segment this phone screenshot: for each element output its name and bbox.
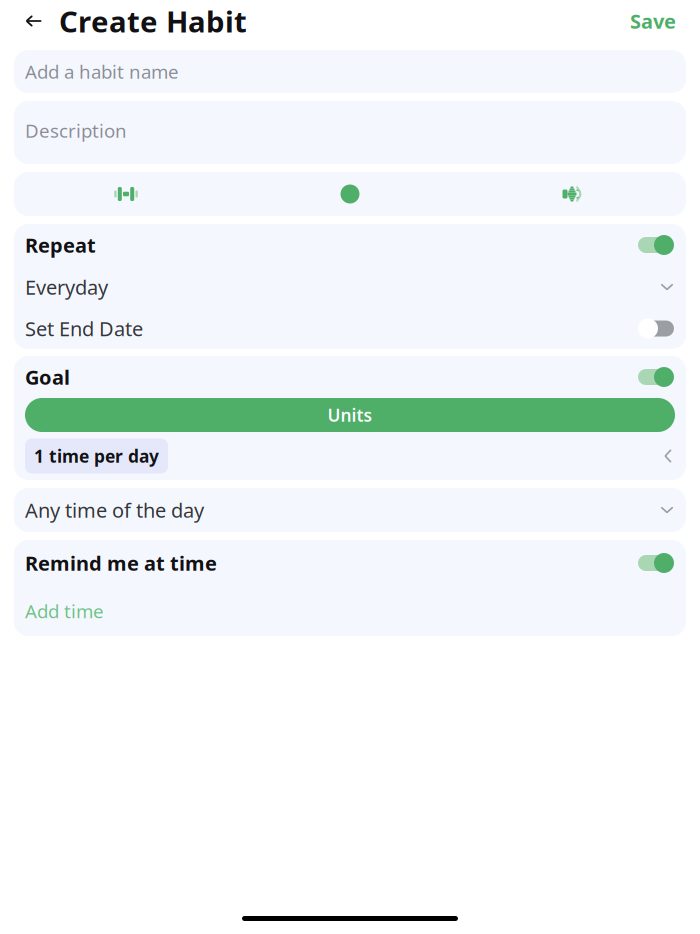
button[interactable]: Choose colour [238,172,462,216]
staticText: Units [327,403,372,426]
button[interactable]: Add time [14,586,686,636]
button[interactable]: Goal [14,356,686,398]
button[interactable]: Choose sound [462,172,686,216]
button[interactable]: Add a habit name [14,50,686,93]
staticText: Any time of the day [25,497,204,523]
button[interactable]: Save [620,1,686,41]
button[interactable]: Choose icon [14,172,238,216]
staticText: Create Habit [59,1,247,40]
staticText: 1 time per day [34,444,159,467]
staticText: Repeat [25,232,96,258]
button[interactable]: Back [14,1,54,41]
staticText: Goal [25,364,70,390]
button[interactable]: Repeat [14,224,686,266]
staticText: Add a habit name [25,59,179,84]
button[interactable]: Everyday [14,266,686,308]
staticText: Everyday [25,274,108,300]
staticText: Remind me at time [25,550,217,576]
staticText: Add time [25,599,104,623]
staticText: Save [630,8,676,34]
button[interactable]: Any time of the day [14,488,686,532]
button[interactable]: Remind me at time [14,540,686,586]
staticText: Set End Date [25,315,143,342]
staticText: Description [25,118,127,143]
button[interactable]: Units [25,398,675,432]
button[interactable]: Description [14,101,686,164]
button[interactable]: 1 time per day [14,432,686,480]
button[interactable]: Set End Date [14,308,686,349]
